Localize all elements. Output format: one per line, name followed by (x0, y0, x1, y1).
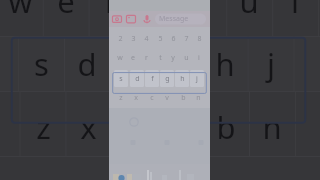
staticText: h (180, 74, 185, 84)
button[interactable]: w (114, 53, 126, 63)
button[interactable]: 4 (140, 34, 152, 44)
staticText: r (105, 0, 118, 22)
staticText: b (216, 106, 236, 148)
staticText: g (165, 74, 170, 84)
button[interactable]: r (140, 53, 152, 63)
button[interactable]: Choose image (127, 14, 137, 24)
staticText: x (80, 106, 97, 148)
staticText: 4 (144, 34, 149, 44)
button[interactable]: s (114, 70, 128, 87)
button[interactable]: t (154, 53, 166, 63)
button[interactable]: u (180, 53, 192, 63)
staticText: u (184, 53, 189, 63)
button[interactable]: i (193, 53, 205, 63)
staticText: h (215, 43, 235, 85)
staticText: v (165, 93, 169, 103)
button[interactable]: Voice input (142, 14, 152, 24)
button[interactable]: 2 (114, 34, 126, 44)
staticText: i (198, 53, 200, 63)
button[interactable]: n (192, 93, 204, 103)
button[interactable]: g (160, 70, 174, 87)
staticText: e (57, 0, 75, 22)
staticText: f (128, 43, 139, 85)
staticText: 8 (197, 34, 202, 44)
button[interactable]: e (127, 53, 139, 63)
staticText: i (291, 0, 299, 22)
button[interactable]: j (190, 70, 204, 87)
button[interactable]: f (145, 70, 159, 87)
staticText: w (117, 53, 123, 63)
staticText: r (145, 53, 148, 63)
staticText: w (8, 0, 33, 22)
staticText: f (151, 74, 154, 84)
staticText: j (267, 43, 275, 85)
staticText: n (262, 106, 282, 148)
button[interactable]: h (175, 70, 189, 87)
staticText: n (196, 93, 201, 103)
staticText: s (119, 74, 123, 84)
staticText: y (171, 53, 175, 63)
button[interactable]: 5 (154, 34, 166, 44)
button[interactable]: Take photo (113, 14, 123, 24)
staticText: 2 (118, 34, 123, 44)
staticText: Message (159, 14, 189, 24)
staticText: x (134, 93, 138, 103)
button[interactable]: d (130, 70, 144, 87)
staticText: t (159, 53, 162, 63)
button[interactable]: y (167, 53, 179, 63)
staticText: c (150, 93, 154, 103)
button[interactable]: v (161, 93, 173, 103)
button[interactable]: 7 (180, 34, 192, 44)
button[interactable]: x (130, 93, 142, 103)
staticText: z (36, 106, 51, 148)
staticText: 6 (171, 34, 176, 44)
staticText: y (195, 0, 211, 22)
staticText: g (169, 43, 189, 85)
button[interactable]: 8 (193, 34, 205, 44)
button[interactable]: Message (155, 13, 205, 25)
staticText: s (34, 43, 49, 85)
staticText: 3 (131, 34, 136, 44)
staticText: d (77, 43, 97, 85)
staticText: t (151, 0, 163, 22)
button[interactable]: b (177, 93, 189, 103)
staticText: e (131, 53, 135, 63)
button[interactable]: c (146, 93, 158, 103)
button[interactable]: 6 (167, 34, 179, 44)
button[interactable]: z (115, 93, 127, 103)
staticText: 5 (158, 34, 163, 44)
staticText: j (196, 74, 198, 84)
staticText: d (135, 74, 140, 84)
staticText: z (119, 93, 123, 103)
staticText: 7 (184, 34, 189, 44)
staticText: b (181, 93, 186, 103)
button[interactable]: 3 (127, 34, 139, 44)
staticText: u (239, 0, 259, 22)
